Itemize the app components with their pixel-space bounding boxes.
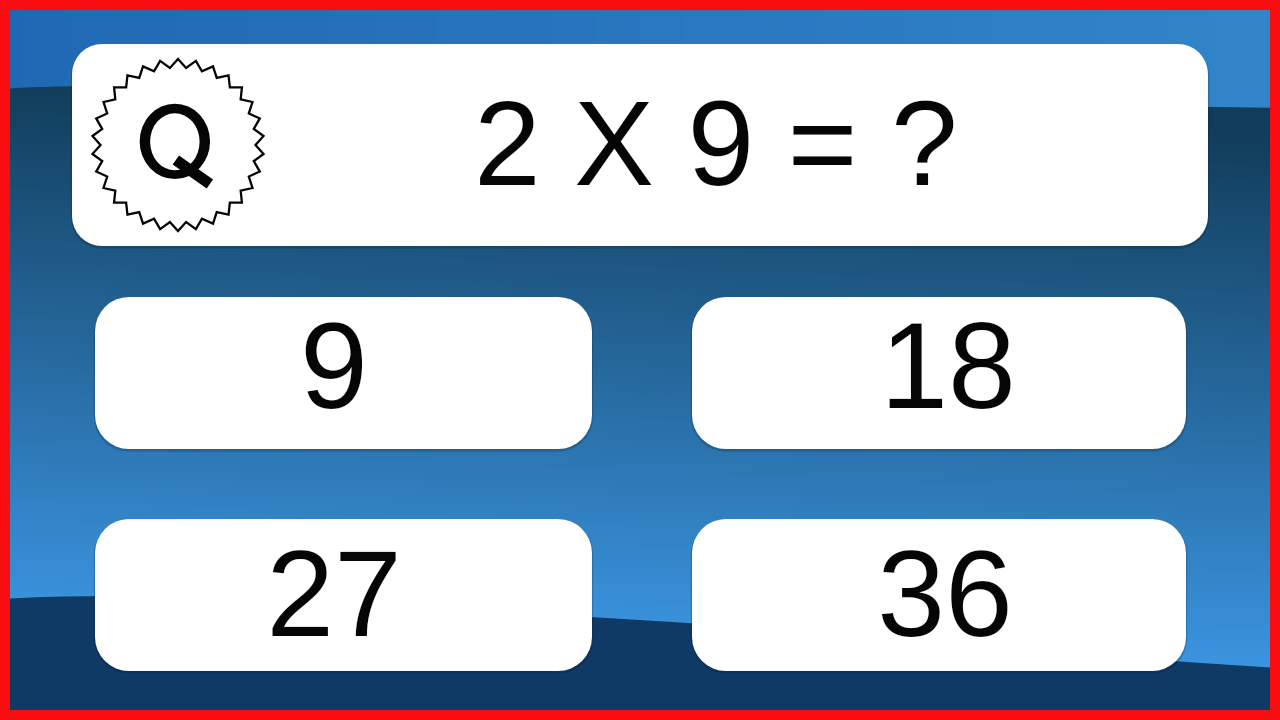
staticText: 2 X 9 = ? <box>474 76 958 210</box>
button[interactable]: 9 <box>95 297 592 449</box>
button[interactable]: 27 <box>95 519 592 671</box>
button[interactable]: 36 <box>692 519 1186 671</box>
button[interactable]: 18 <box>692 297 1186 449</box>
button[interactable]: 2 X 9 = ? <box>72 44 1208 246</box>
staticText: 9 <box>300 298 368 434</box>
staticText: 18 <box>880 298 1016 434</box>
staticText: 36 <box>877 526 1013 662</box>
staticText: 27 <box>266 526 402 662</box>
